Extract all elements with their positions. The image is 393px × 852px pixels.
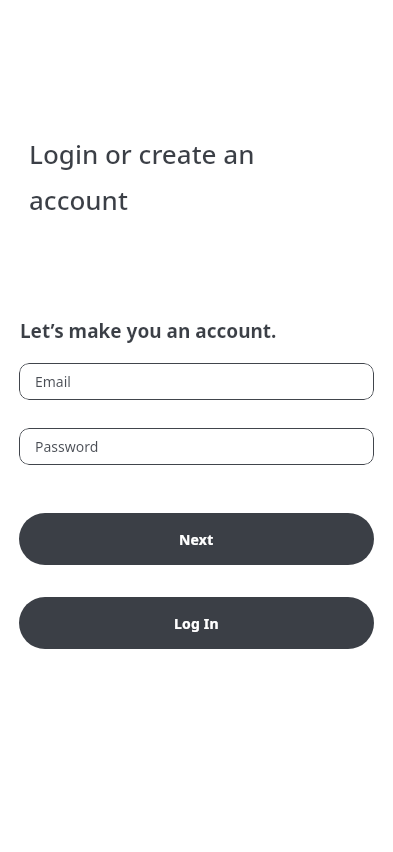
staticText: Email — [35, 372, 71, 391]
staticText: Log In — [174, 614, 219, 633]
button[interactable]: Password — [19, 428, 374, 465]
staticText: Next — [179, 530, 214, 549]
button[interactable]: Email — [19, 363, 374, 400]
button[interactable]: Next — [19, 513, 374, 565]
button[interactable]: Log In — [19, 597, 374, 649]
staticText: Password — [35, 437, 99, 456]
staticText: Login or create an account — [29, 136, 303, 218]
staticText: Let’s make you an account. — [20, 318, 277, 344]
